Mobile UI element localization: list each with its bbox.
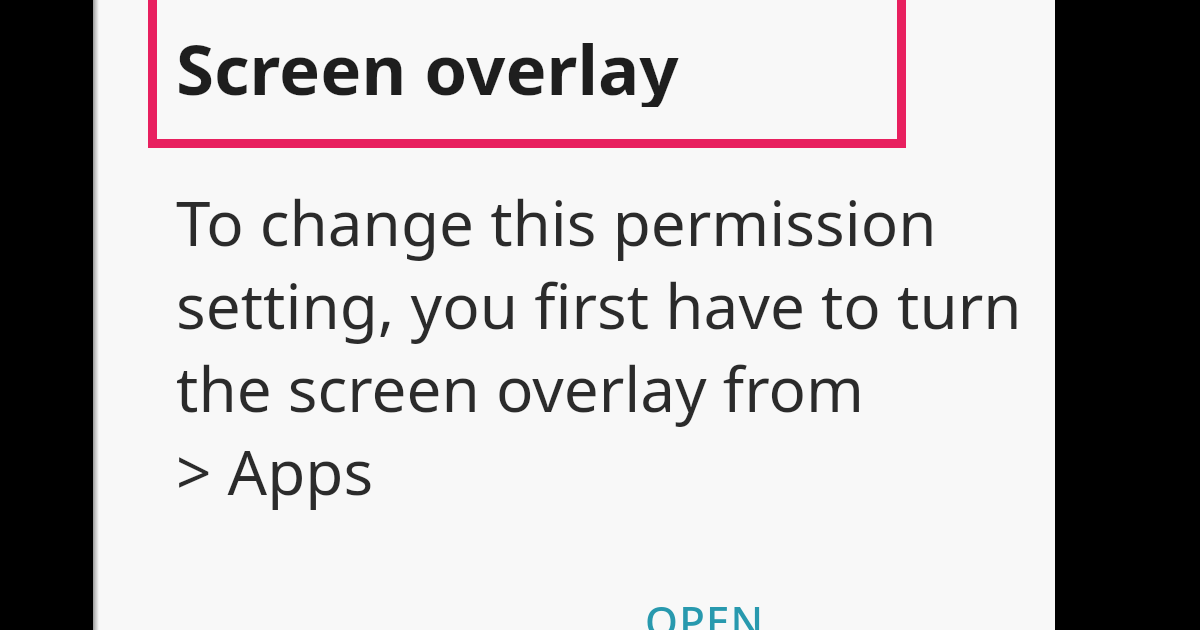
staticText: Screen overlay detected <box>176 21 936 107</box>
staticText: > Apps <box>176 429 374 512</box>
staticText: the screen overlay from Settings <box>176 346 1036 429</box>
staticText: To change this permission <box>176 180 937 263</box>
staticText: setting, you first have to turn off <box>176 263 1036 346</box>
staticText: OPEN SETTINGS <box>645 592 981 630</box>
button[interactable]: Open settings <box>645 592 981 630</box>
button[interactable]: Screen overlay detected <box>176 21 936 107</box>
